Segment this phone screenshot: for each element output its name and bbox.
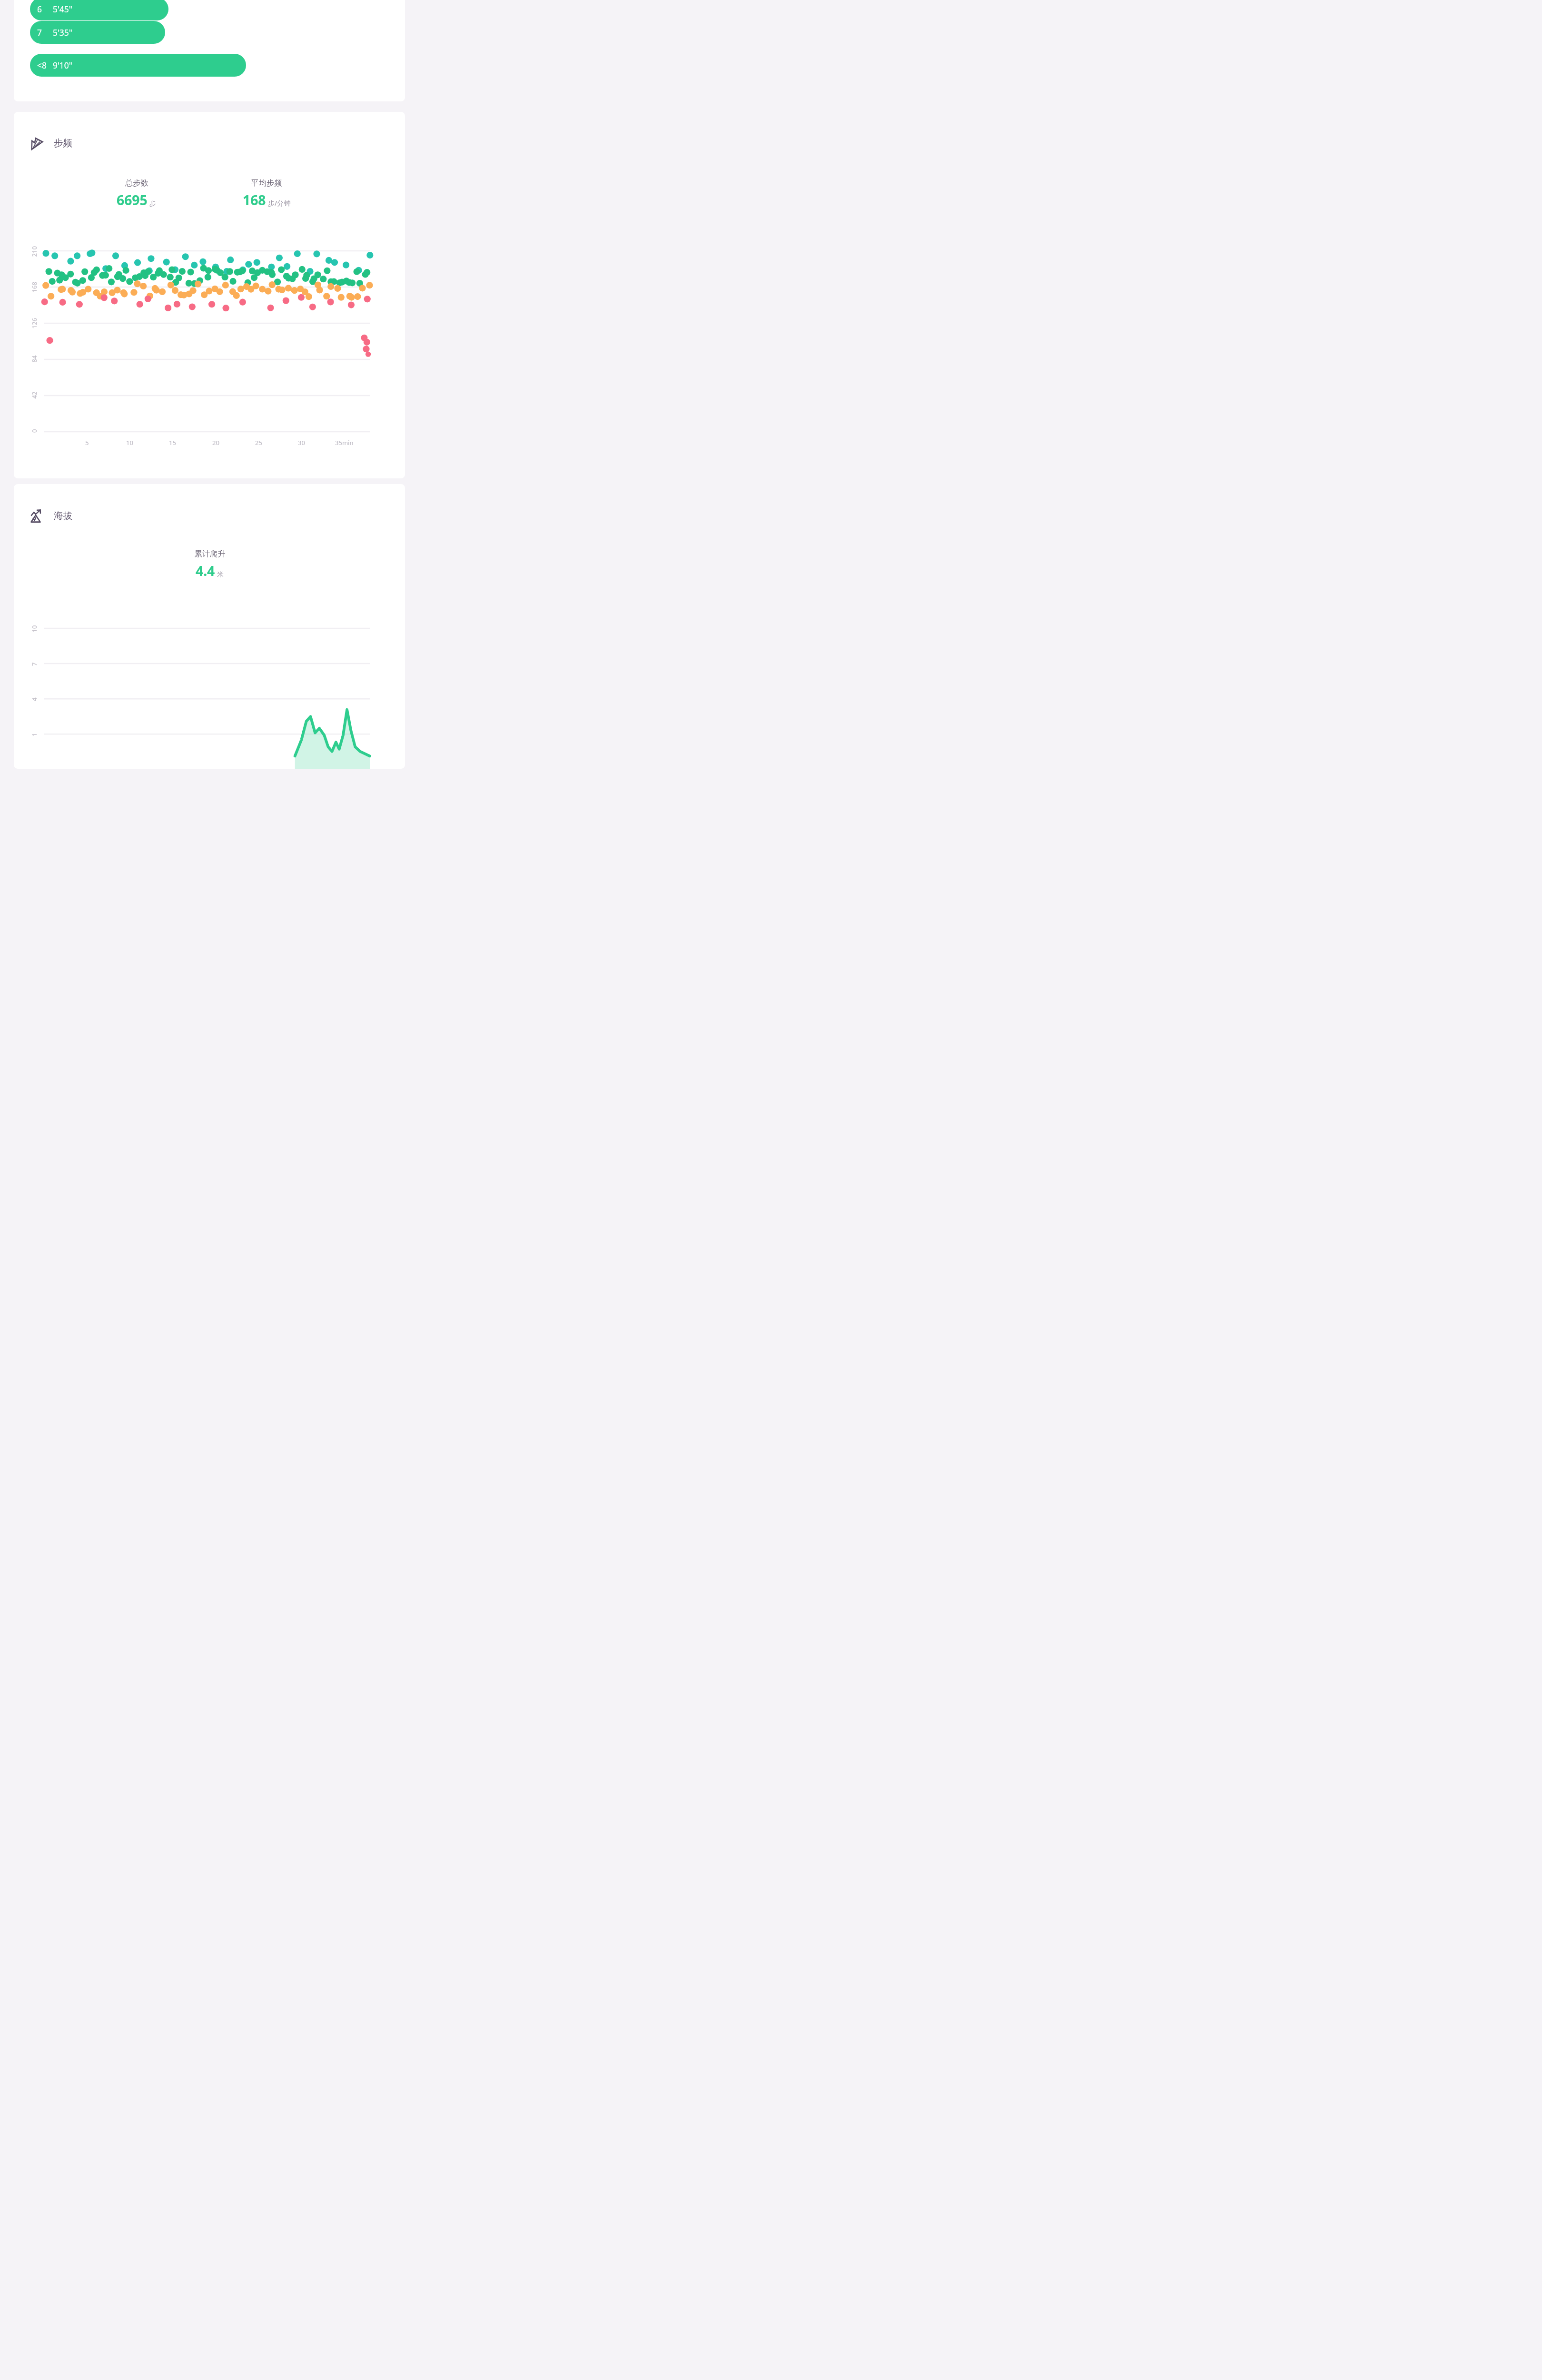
staticText: 步/分钟 bbox=[268, 198, 291, 208]
staticText: 4.4 bbox=[196, 562, 215, 580]
staticText: 海拔 bbox=[54, 510, 73, 522]
staticText: 米 bbox=[217, 570, 224, 578]
staticText: 9'10" bbox=[53, 59, 72, 71]
staticText: 1 bbox=[30, 733, 39, 736]
staticText: 7 bbox=[30, 662, 39, 666]
staticText: 步 bbox=[149, 199, 157, 208]
button[interactable]: 海拔 bbox=[30, 506, 73, 526]
staticText: 10 bbox=[126, 438, 133, 447]
staticText: 平均步频 bbox=[251, 178, 282, 188]
staticText: 6695 bbox=[117, 191, 148, 209]
staticText: 0 bbox=[30, 429, 39, 433]
staticText: 步频 bbox=[54, 137, 73, 149]
other: 海拔 bbox=[30, 509, 44, 523]
staticText: 4 bbox=[30, 697, 39, 701]
staticText: 126 bbox=[30, 318, 38, 329]
staticText: 5'35" bbox=[53, 27, 72, 38]
staticText: 25 bbox=[255, 438, 262, 447]
staticText: 6 bbox=[37, 3, 42, 15]
button[interactable]: 步频 bbox=[30, 133, 73, 153]
button[interactable]: 6 bbox=[30, 0, 168, 20]
button[interactable]: 7 bbox=[30, 21, 165, 44]
staticText: 7 bbox=[37, 27, 42, 38]
staticText: 35min bbox=[335, 438, 354, 447]
other: 步频 bbox=[30, 136, 44, 150]
staticText: 168 bbox=[243, 191, 266, 209]
staticText: 84 bbox=[30, 355, 38, 362]
staticText: 42 bbox=[30, 392, 38, 399]
staticText: 10 bbox=[30, 625, 38, 632]
staticText: 210 bbox=[30, 246, 38, 257]
staticText: 30 bbox=[298, 438, 305, 447]
staticText: 15 bbox=[169, 438, 176, 447]
staticText: 168 bbox=[30, 282, 38, 293]
button[interactable]: <8 bbox=[30, 54, 246, 77]
staticText: 5 bbox=[85, 438, 89, 447]
staticText: 20 bbox=[212, 438, 219, 447]
staticText: 总步数 bbox=[125, 178, 148, 188]
staticText: 5'45" bbox=[53, 3, 72, 15]
staticText: <8 bbox=[37, 59, 47, 71]
staticText: 累计爬升 bbox=[194, 549, 226, 559]
